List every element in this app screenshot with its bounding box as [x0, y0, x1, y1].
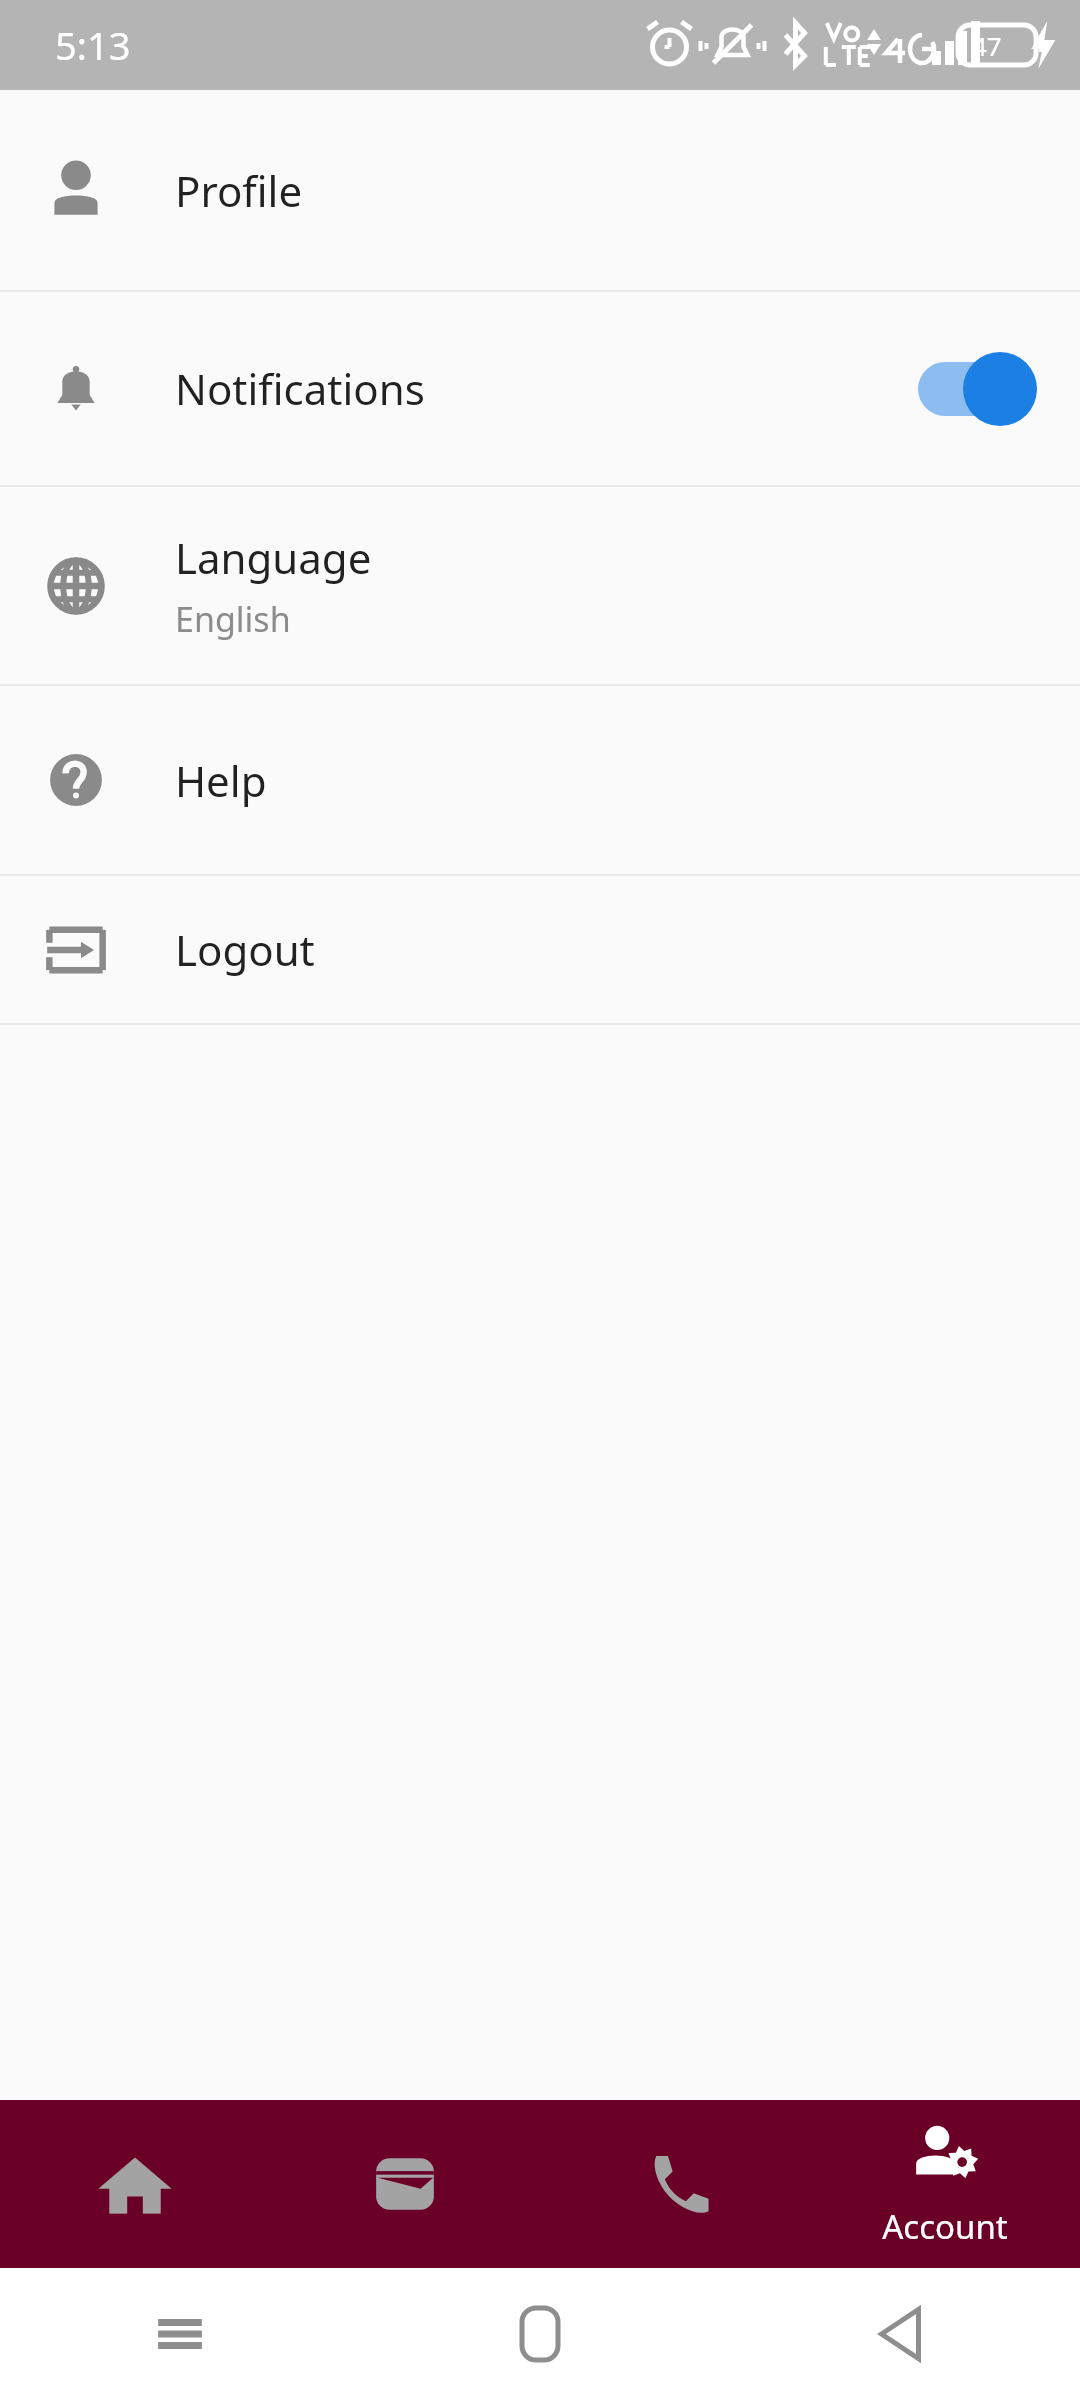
button[interactable]: Cards — [270, 2100, 540, 2268]
staticText: 5:13 — [55, 19, 131, 71]
button[interactable]: Back — [720, 2268, 1080, 2400]
staticText: Logout — [175, 921, 315, 978]
staticText: Language — [175, 529, 372, 586]
staticText: Help — [175, 752, 267, 809]
button[interactable]: Calls — [540, 2100, 810, 2268]
button[interactable]: Home — [360, 2268, 720, 2400]
staticText: 47 — [972, 28, 1002, 63]
staticText: Notifications — [175, 360, 425, 417]
button[interactable]: Recents — [0, 2268, 360, 2400]
button[interactable]: Language — [0, 487, 1080, 684]
staticText: English — [175, 596, 291, 642]
staticText: Account — [882, 2204, 1008, 2249]
button[interactable]: Notifications toggle — [910, 349, 1040, 429]
button[interactable]: Profile — [0, 90, 1080, 290]
button[interactable]: Account — [810, 2100, 1080, 2268]
staticText: Profile — [175, 162, 303, 219]
button[interactable]: Home — [0, 2100, 270, 2268]
button[interactable]: Logout — [0, 876, 1080, 1023]
button[interactable]: Help — [0, 686, 1080, 874]
button[interactable]: Notifications — [0, 292, 1080, 485]
